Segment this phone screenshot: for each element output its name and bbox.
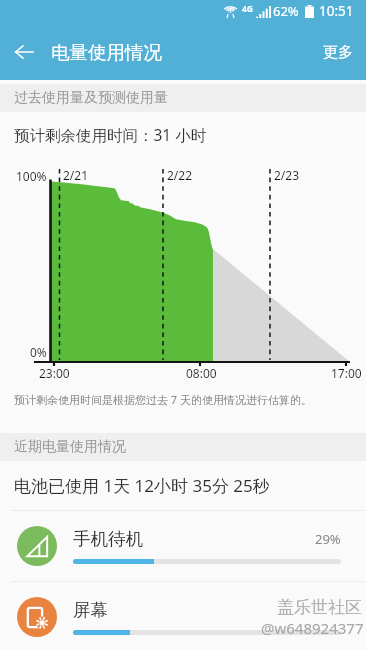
button[interactable]: Back [0,28,48,76]
staticText: 29% [315,530,341,548]
staticText: 预计剩余使用时间是根据您过去 7 天的使用情况进行估算的。 [14,392,313,407]
staticText: 电量使用情况 [51,41,162,64]
staticText: 2/22 [167,167,193,183]
button[interactable]: 更多 [307,27,366,78]
staticText: 08:00 [186,365,217,381]
staticText: 盖乐世社区 [277,597,362,618]
staticText: @w648924377 [261,618,364,638]
button[interactable]: 屏幕 [0,582,366,650]
staticText: 预计剩余使用时间：31 小时 [14,124,207,145]
staticText: 手机待机 [73,528,143,550]
staticText: 更多 [323,43,353,62]
staticText: 过去使用量及预测使用量 [14,89,168,107]
staticText: 100% [16,168,47,184]
staticText: 2/21 [63,167,89,183]
staticText: 2/23 [274,167,300,183]
staticText: 23:00 [39,365,70,381]
staticText: 10:51 [319,2,354,20]
staticText: 近期电量使用情况 [14,438,126,456]
staticText: 17:00 [331,365,362,381]
staticText: 屏幕 [73,599,108,621]
staticText: 0% [30,344,47,360]
staticText: 62% [273,2,299,20]
button[interactable]: 手机待机 [0,511,366,581]
staticText: 电池已使用 1天 12小时 35分 25秒 [14,474,270,497]
staticText: 4G [242,3,254,15]
